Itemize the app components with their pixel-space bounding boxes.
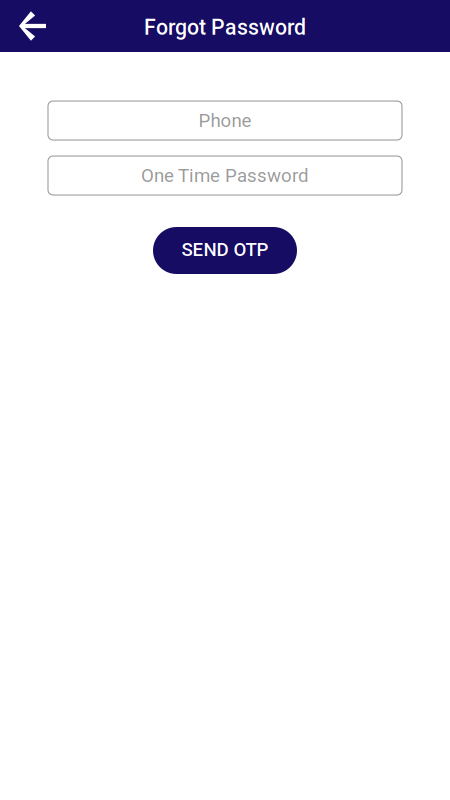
staticText: Phone [198, 110, 251, 131]
button[interactable]: One Time Password [48, 156, 402, 195]
button[interactable]: Phone [48, 101, 402, 140]
button[interactable]: Back [0, 0, 59, 52]
button[interactable]: SEND OTP [153, 227, 297, 274]
staticText: One Time Password [141, 165, 309, 186]
staticText: Forgot Password [144, 15, 306, 40]
staticText: SEND OTP [181, 239, 268, 260]
